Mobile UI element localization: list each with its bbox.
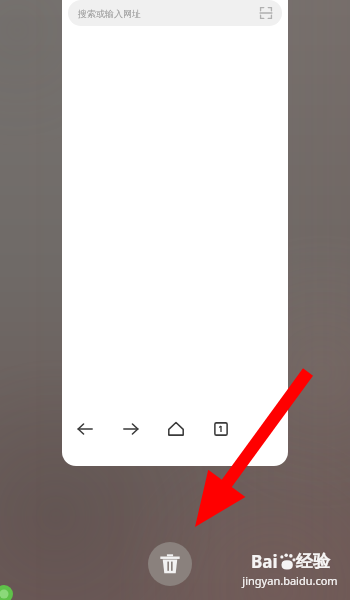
button[interactable]: Menu	[243, 406, 288, 452]
button[interactable]: Scan code	[258, 5, 274, 21]
staticText: jingyan.baidu.com	[242, 573, 338, 588]
staticText: Bai	[251, 550, 278, 573]
button[interactable]: Back	[62, 406, 108, 452]
staticText: 经验	[296, 551, 330, 572]
button[interactable]: Close all tabs	[148, 542, 192, 586]
staticText: 搜索或输入网址	[78, 8, 141, 19]
button[interactable]: Home	[153, 406, 198, 452]
button[interactable]: Tabs	[198, 406, 243, 452]
button[interactable]: 搜索或输入网址	[68, 0, 282, 26]
button[interactable]: Forward	[108, 406, 153, 452]
